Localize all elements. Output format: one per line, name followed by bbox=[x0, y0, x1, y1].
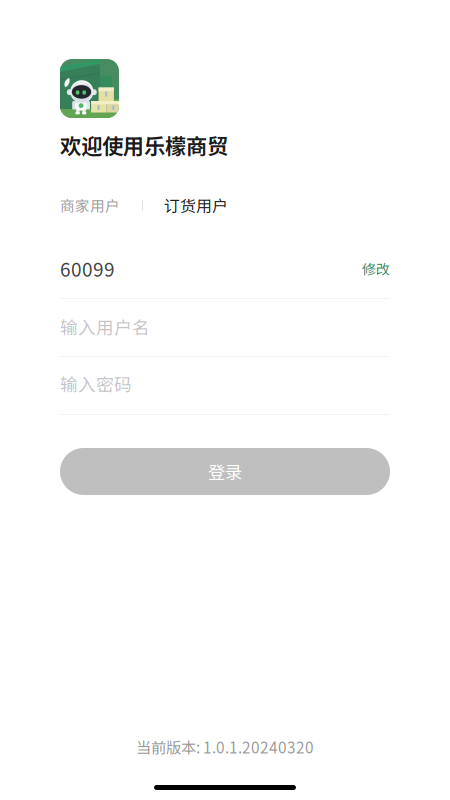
staticText: 当前版本: 1.0.1.20240320 bbox=[136, 736, 314, 758]
staticText: 输入用户名 bbox=[60, 314, 150, 339]
staticText: 欢迎使用乐檬商贸 bbox=[60, 130, 228, 160]
button[interactable]: 登录 bbox=[60, 448, 390, 495]
staticText: 登录 bbox=[208, 459, 242, 484]
button[interactable]: 订货用户 bbox=[164, 194, 228, 216]
button[interactable]: 60099 bbox=[60, 241, 390, 299]
button[interactable]: 商家用户 bbox=[60, 194, 120, 216]
staticText: 输入密码 bbox=[60, 371, 132, 396]
staticText: 订货用户 bbox=[164, 193, 228, 217]
button[interactable]: 输入密码 bbox=[60, 357, 390, 415]
staticText: 60099 bbox=[60, 255, 115, 282]
staticText: 修改 bbox=[362, 258, 390, 279]
button[interactable]: 输入用户名 bbox=[60, 299, 390, 357]
staticText: 商家用户 bbox=[60, 194, 120, 216]
